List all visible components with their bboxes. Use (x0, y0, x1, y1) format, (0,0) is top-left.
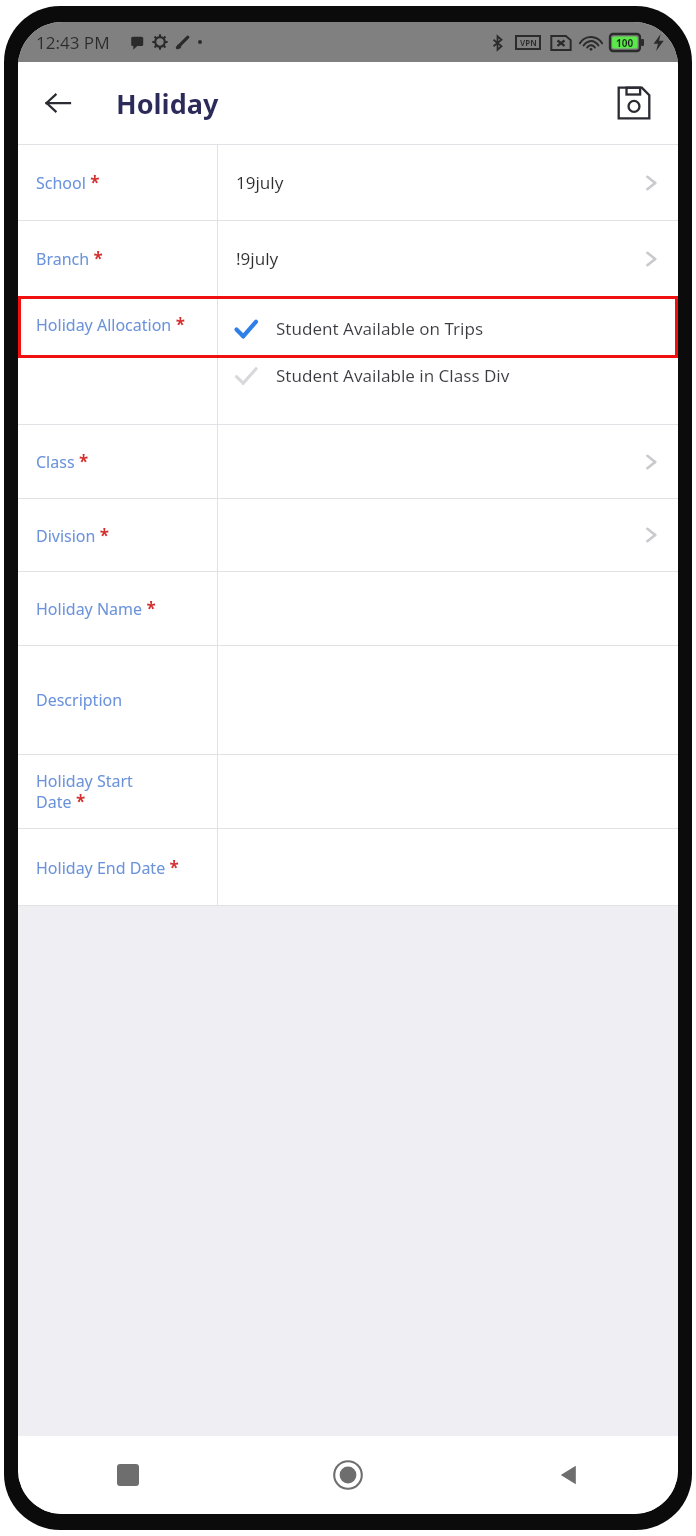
button[interactable]: Branch * (18, 221, 678, 296)
staticText: Description (36, 689, 123, 711)
button[interactable]: Student Available on Trips (232, 305, 678, 352)
staticText: !9july (236, 247, 279, 270)
button[interactable]: Back (458, 1436, 678, 1514)
staticText: School * (36, 171, 100, 194)
button[interactable]: Description (18, 646, 678, 754)
button[interactable]: Student Available in Class Div (232, 352, 678, 399)
button[interactable]: Class * (18, 425, 678, 498)
button[interactable]: Back (32, 77, 84, 129)
button[interactable]: Save (608, 77, 660, 129)
staticText: 12:43 PM (36, 31, 110, 54)
staticText: VPN (520, 37, 537, 48)
staticText: Holiday Start Date * (36, 770, 133, 813)
button[interactable]: Division * (18, 499, 678, 571)
button[interactable]: Holiday Name * (18, 572, 678, 645)
button[interactable]: Holiday End Date * (18, 829, 678, 905)
staticText: Branch * (36, 247, 103, 270)
button[interactable]: Home (238, 1436, 458, 1514)
staticText: Division * (36, 524, 110, 547)
staticText: Student Available in Class Div (276, 364, 510, 387)
button[interactable]: Recent apps (18, 1436, 238, 1514)
staticText: Student Available on Trips (276, 317, 484, 340)
staticText: Holiday Name * (36, 597, 156, 620)
staticText: Holiday (116, 85, 219, 122)
button[interactable]: School * (18, 145, 678, 220)
staticText: 100 (616, 36, 634, 50)
staticText: Holiday Allocation * (36, 313, 185, 336)
staticText: 19july (236, 171, 284, 194)
staticText: Class * (36, 450, 89, 473)
button[interactable]: Holiday Start Date * (18, 755, 678, 828)
staticText: Holiday End Date * (36, 856, 179, 879)
